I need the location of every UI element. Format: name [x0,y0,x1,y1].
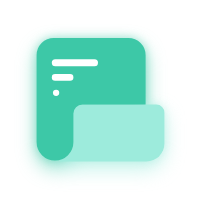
button[interactable]: App logo [0,0,200,200]
